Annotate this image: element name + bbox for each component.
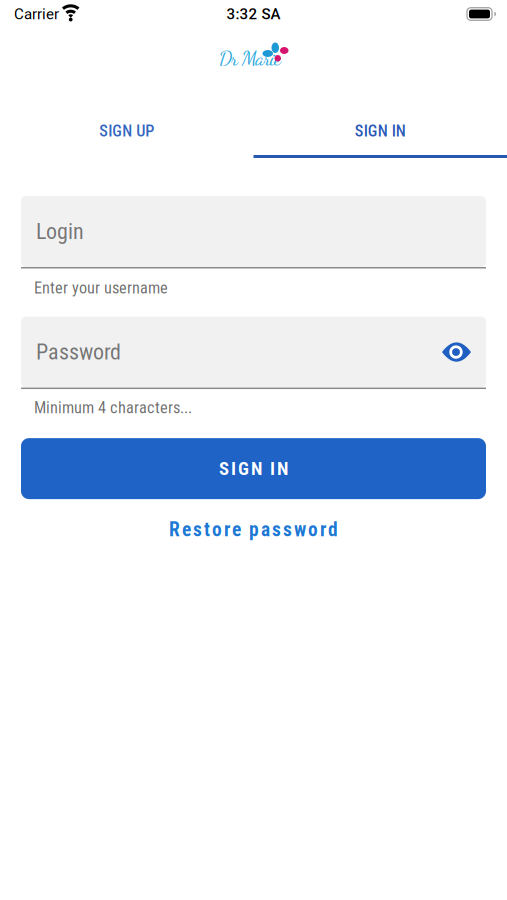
staticText: Carrier [14,5,59,23]
staticText: S I G N I N [219,458,288,480]
staticText: Password [36,339,121,365]
staticText: 3:32 SA [226,5,280,23]
button[interactable]: R e s t o r e p a s s w o r d [169,518,338,541]
button[interactable]: SIGN UP [0,107,253,155]
staticText: Enter your username [34,278,168,298]
staticText: SIGN IN [355,121,406,141]
staticText: Dr Marie [219,46,281,70]
staticText: R e s t o r e p a s s w o r d [169,518,338,541]
button[interactable]: Login [21,196,486,268]
button[interactable]: Password [21,317,486,389]
button[interactable]: SIGN IN [253,107,507,155]
button[interactable] [442,342,471,362]
staticText: Minimum 4 characters... [34,398,192,417]
staticText: Login [36,219,84,244]
button[interactable]: S I G N I N [21,438,486,499]
staticText: SIGN UP [99,121,154,141]
